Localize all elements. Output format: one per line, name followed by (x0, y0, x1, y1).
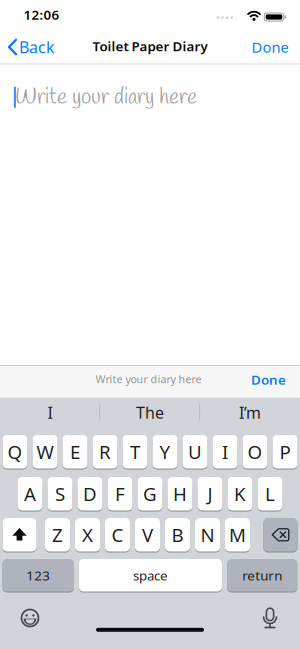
button[interactable]: P (272, 434, 297, 469)
button[interactable]: V (135, 517, 160, 552)
button[interactable]: G (137, 476, 162, 511)
staticText: P (279, 439, 290, 464)
staticText: H (173, 481, 187, 506)
staticText: C (111, 522, 123, 547)
staticText: 12:06 (23, 6, 59, 23)
staticText: I’m (239, 402, 261, 423)
button[interactable]: I (212, 434, 237, 469)
button[interactable]: F (107, 476, 132, 511)
button[interactable]: A (17, 476, 42, 511)
button[interactable]: I’m (205, 397, 295, 427)
button[interactable]: Y (152, 434, 177, 469)
staticText: L (265, 481, 275, 506)
staticText: T (130, 439, 140, 464)
button[interactable]: return (227, 558, 297, 592)
button[interactable]: B (165, 517, 190, 552)
button[interactable]: U (182, 434, 207, 469)
button[interactable]: Done (245, 366, 291, 392)
staticText: A (24, 481, 36, 506)
staticText: Toilet Paper Diary (92, 37, 207, 55)
button[interactable]: Back (9, 36, 55, 58)
staticText: I (47, 402, 52, 423)
staticText: I (222, 439, 228, 464)
button[interactable]: R (92, 434, 117, 469)
staticText: V (142, 522, 153, 547)
button[interactable]: Z (45, 517, 70, 552)
staticText: Z (52, 522, 63, 547)
button[interactable]: space (79, 558, 222, 592)
button[interactable]: H (167, 476, 192, 511)
staticText: Back (19, 36, 55, 58)
staticText: W (36, 439, 53, 464)
staticText: M (229, 522, 246, 547)
button[interactable]: M (225, 517, 250, 552)
button[interactable]: The (105, 397, 195, 427)
button[interactable]: E (62, 434, 87, 469)
staticText: R (99, 439, 111, 464)
staticText: D (83, 481, 97, 506)
button[interactable]: J (197, 476, 222, 511)
button[interactable]: L (257, 476, 282, 511)
staticText: Q (7, 439, 22, 464)
staticText: N (200, 522, 214, 547)
staticText: S (55, 481, 65, 506)
staticText: X (82, 522, 93, 547)
staticText: The (136, 402, 164, 423)
staticText: Done (251, 37, 288, 57)
staticText: B (171, 522, 183, 547)
staticText: J (207, 481, 212, 506)
staticText: Y (159, 439, 170, 464)
staticText: 123 (26, 566, 50, 584)
staticText: space (133, 566, 168, 584)
button[interactable]: W (32, 434, 57, 469)
button[interactable]: C (105, 517, 130, 552)
button[interactable]: Shift (2, 517, 36, 552)
staticText: G (143, 481, 157, 506)
staticText: E (70, 439, 80, 464)
staticText: O (247, 439, 262, 464)
staticText: return (242, 566, 282, 584)
button[interactable]: T (122, 434, 147, 469)
button[interactable]: Done (244, 36, 296, 58)
button[interactable]: Delete (263, 517, 297, 552)
button[interactable]: Emoji (16, 604, 44, 632)
button[interactable]: K (227, 476, 252, 511)
staticText: Done (251, 371, 286, 388)
button[interactable]: S (47, 476, 72, 511)
staticText: K (234, 481, 246, 506)
button[interactable]: 123 (2, 558, 74, 592)
staticText: U (188, 439, 202, 464)
staticText: Write your diary here (15, 84, 197, 112)
button[interactable]: N (195, 517, 220, 552)
button[interactable]: Q (2, 434, 27, 469)
button[interactable]: I (5, 397, 95, 427)
button[interactable]: D (77, 476, 102, 511)
staticText: F (115, 481, 125, 506)
staticText: Write your diary here (95, 372, 201, 386)
button[interactable]: O (242, 434, 267, 469)
button[interactable]: Dictation (256, 604, 284, 632)
button[interactable]: X (75, 517, 100, 552)
